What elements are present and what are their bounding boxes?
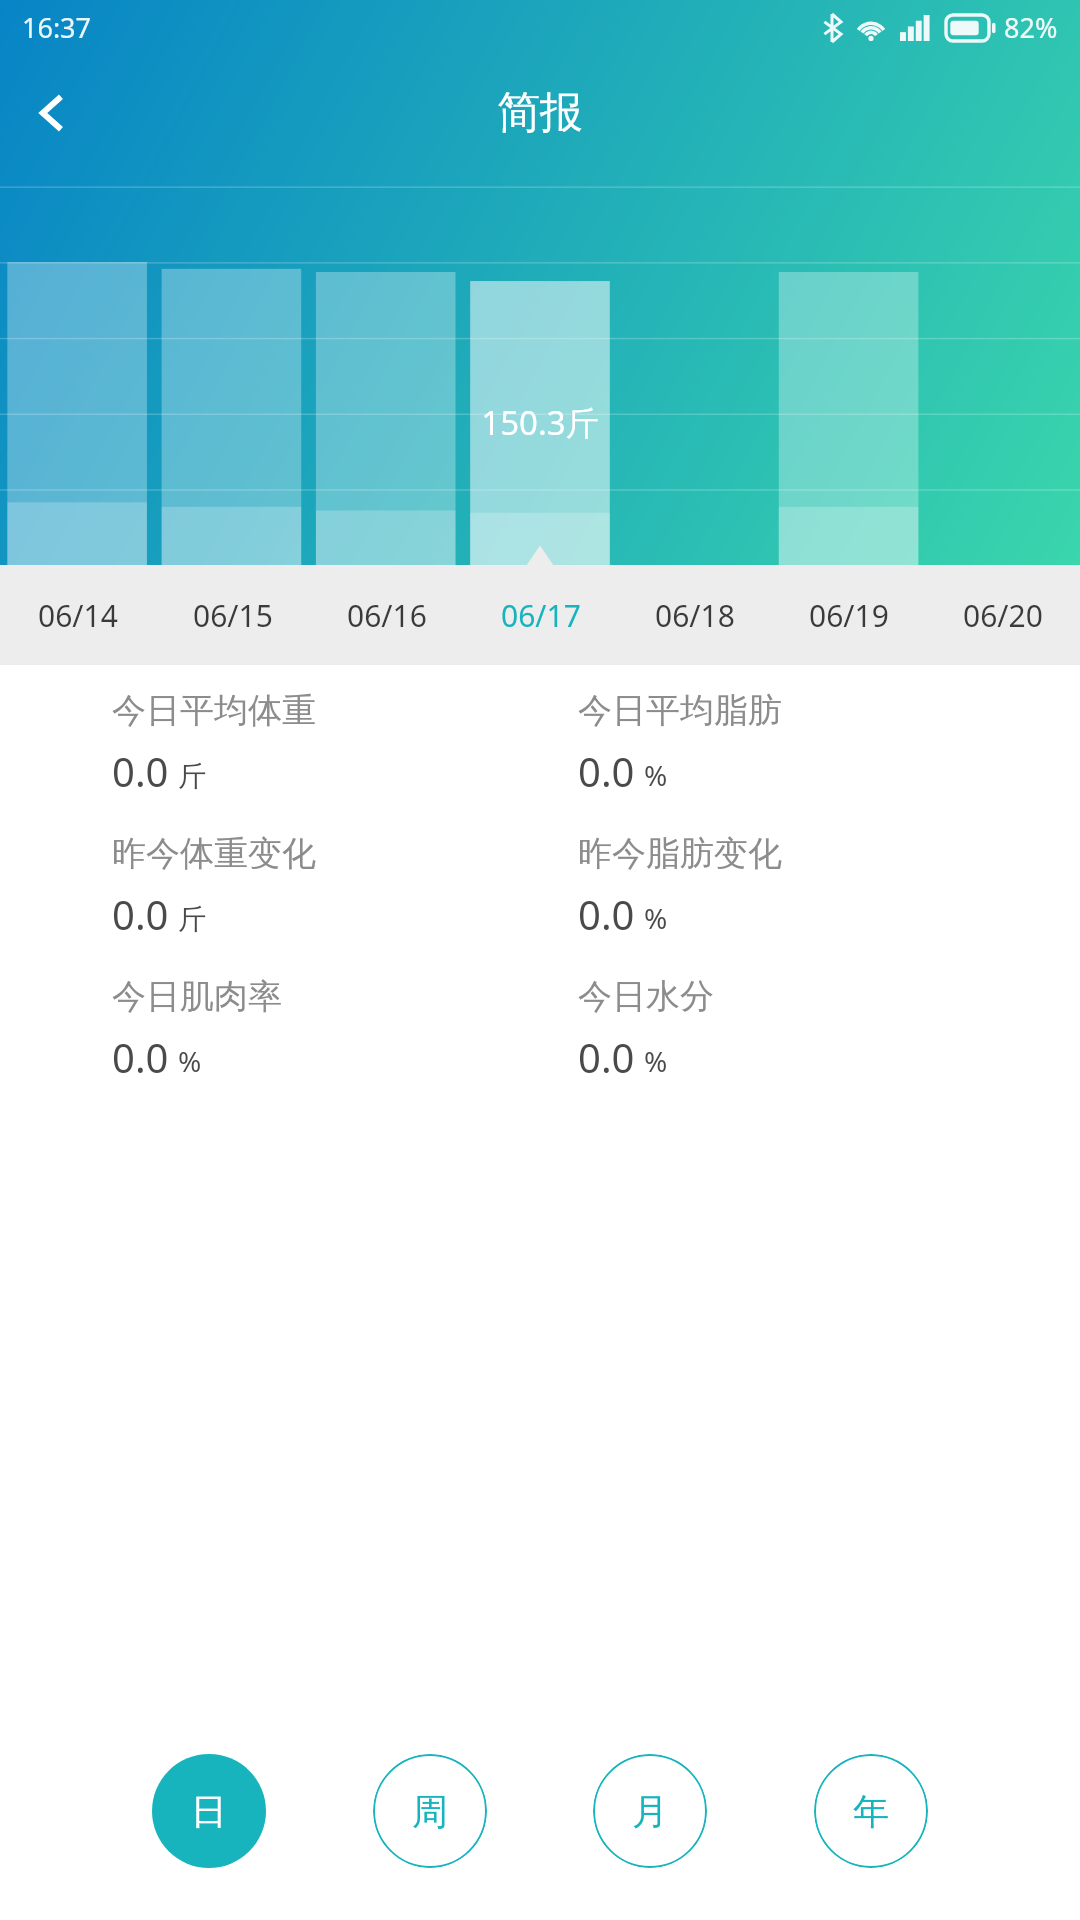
staticText: 周 bbox=[412, 1789, 448, 1834]
button[interactable]: 06/14 bbox=[0, 565, 155, 665]
staticText: % bbox=[644, 899, 668, 937]
button[interactable]: 年 bbox=[814, 1754, 928, 1868]
staticText: 今日肌肉率 bbox=[112, 975, 282, 1018]
button[interactable]: 06/19 bbox=[772, 565, 926, 665]
button[interactable]: 06/15 bbox=[155, 565, 310, 665]
staticText: % bbox=[644, 756, 668, 794]
staticText: 0.0 bbox=[578, 1030, 635, 1084]
staticText: 16:37 bbox=[22, 9, 92, 46]
button[interactable]: 月 bbox=[593, 1754, 707, 1868]
button[interactable]: 06/20 bbox=[926, 565, 1080, 665]
staticText: 0.0 bbox=[578, 887, 635, 941]
button[interactable]: 06/17 bbox=[464, 565, 618, 665]
staticText: 昨今脂肪变化 bbox=[578, 832, 782, 875]
button[interactable]: 周 bbox=[373, 1754, 487, 1868]
button[interactable]: 日 bbox=[152, 1754, 266, 1868]
staticText: 06/14 bbox=[38, 595, 118, 636]
staticText: 0.0 bbox=[112, 887, 169, 941]
staticText: 0.0 bbox=[112, 1030, 169, 1084]
staticText: 0.0 bbox=[112, 744, 169, 798]
staticText: 简报 bbox=[497, 86, 583, 140]
staticText: 日 bbox=[191, 1789, 227, 1834]
staticText: 82% bbox=[1004, 9, 1058, 46]
staticText: 06/20 bbox=[963, 595, 1043, 636]
staticText: 年 bbox=[853, 1789, 889, 1834]
staticText: 0.0 bbox=[578, 744, 635, 798]
staticText: % bbox=[178, 1042, 202, 1080]
staticText: 06/19 bbox=[809, 595, 889, 636]
staticText: 06/18 bbox=[655, 595, 735, 636]
staticText: 06/16 bbox=[347, 595, 427, 636]
staticText: 06/17 bbox=[501, 595, 581, 636]
button[interactable]: 06/16 bbox=[310, 565, 464, 665]
staticText: 昨今体重变化 bbox=[112, 832, 316, 875]
staticText: 斤 bbox=[178, 759, 206, 794]
staticText: 今日水分 bbox=[578, 975, 714, 1018]
button[interactable]: 06/18 bbox=[618, 565, 772, 665]
staticText: 06/15 bbox=[193, 595, 273, 636]
staticText: 月 bbox=[632, 1789, 668, 1834]
staticText: % bbox=[644, 1042, 668, 1080]
button[interactable]: Back bbox=[14, 75, 90, 151]
staticText: 斤 bbox=[178, 902, 206, 937]
staticText: 150.3斤 bbox=[481, 400, 599, 445]
staticText: 今日平均脂肪 bbox=[578, 689, 782, 732]
staticText: 今日平均体重 bbox=[112, 689, 316, 732]
